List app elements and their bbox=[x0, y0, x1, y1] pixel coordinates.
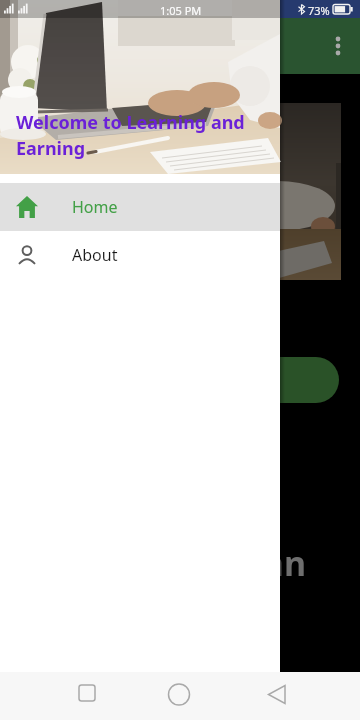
button[interactable] bbox=[332, 34, 344, 58]
staticText: Home bbox=[72, 196, 118, 218]
staticText: Welcome to Learning and Earning bbox=[16, 110, 245, 160]
button[interactable] bbox=[0, 672, 120, 720]
button[interactable] bbox=[120, 672, 240, 720]
button[interactable] bbox=[21, 357, 339, 403]
staticText: About bbox=[72, 244, 118, 266]
staticText: 1:05 PM bbox=[160, 3, 202, 18]
staticText: Pakistan bbox=[159, 540, 307, 586]
button[interactable] bbox=[240, 672, 360, 720]
button[interactable]: About bbox=[0, 231, 280, 279]
staticText: 73% bbox=[308, 3, 330, 18]
button[interactable]: Home bbox=[0, 183, 280, 231]
